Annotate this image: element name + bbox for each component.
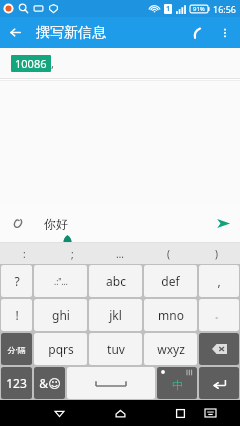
button[interactable]: 10086 [15, 56, 47, 71]
button[interactable]: More options [212, 20, 238, 46]
staticText: 分·隔 [7, 344, 26, 355]
button[interactable]: pqrs [34, 333, 87, 365]
staticText: ; [71, 247, 74, 261]
staticText: &☺ [39, 375, 61, 391]
staticText: .:"… [54, 276, 68, 287]
button[interactable]: Back [0, 17, 31, 48]
staticText: 91% [193, 5, 205, 13]
staticText: ! [15, 307, 19, 323]
button[interactable]: def [144, 265, 197, 297]
staticText: 你好 [44, 216, 68, 231]
button[interactable]: wxyz [144, 333, 197, 365]
button[interactable]: Recents [165, 400, 195, 426]
button[interactable]: Delete [199, 333, 239, 365]
staticText: jkl [109, 307, 122, 323]
staticText: , [51, 56, 54, 71]
staticText: pqrs [48, 341, 74, 357]
staticText: 1 [166, 4, 171, 14]
button[interactable]: .:"… [34, 265, 87, 297]
button[interactable]: &☺ [34, 367, 65, 399]
button[interactable]: ) [192, 243, 240, 264]
staticText: 123 [6, 375, 27, 391]
button[interactable]: abc [89, 265, 142, 297]
button[interactable]: , [199, 265, 239, 297]
staticText: ) [215, 247, 218, 261]
button[interactable]: ghi [34, 299, 87, 331]
staticText: , [217, 273, 221, 289]
button[interactable]: 123 [1, 367, 32, 399]
button[interactable]: Home [105, 400, 135, 426]
button[interactable]: Enter [199, 367, 239, 399]
staticText: abc [106, 273, 126, 289]
button[interactable]: Attach [0, 206, 34, 240]
staticText: def [161, 273, 180, 289]
staticText: wxyz [157, 341, 185, 357]
staticText: … [116, 247, 124, 261]
button[interactable]: ? [1, 265, 32, 297]
button[interactable]: Back [44, 400, 75, 426]
button[interactable]: jkl [89, 299, 142, 331]
staticText: ( [167, 247, 170, 261]
button[interactable]: Space [67, 367, 155, 399]
button[interactable]: 。 [199, 299, 239, 331]
button[interactable]: ( [144, 243, 192, 264]
staticText: 16:56 [213, 3, 237, 15]
button[interactable]: Keyboard [195, 400, 225, 426]
button[interactable]: Send [206, 206, 240, 240]
button[interactable]: Switch language [157, 367, 197, 399]
button[interactable]: 分·隔 [1, 333, 32, 365]
staticText: 。 [215, 310, 223, 320]
staticText: 中 [172, 378, 183, 392]
staticText: mno [158, 307, 184, 323]
button[interactable]: mno [144, 299, 197, 331]
button[interactable]: : [0, 243, 48, 264]
staticText: 10086 [15, 56, 47, 71]
staticText: ? [14, 273, 20, 289]
button[interactable]: Call [181, 17, 212, 48]
staticText: tuv [107, 341, 125, 357]
button[interactable]: … [96, 243, 144, 264]
button[interactable]: ! [1, 299, 32, 331]
button[interactable]: tuv [89, 333, 142, 365]
staticText: 撰写新信息 [36, 24, 106, 42]
staticText: : [23, 247, 26, 261]
staticText: ghi [52, 307, 70, 323]
button[interactable]: ; [48, 243, 96, 264]
